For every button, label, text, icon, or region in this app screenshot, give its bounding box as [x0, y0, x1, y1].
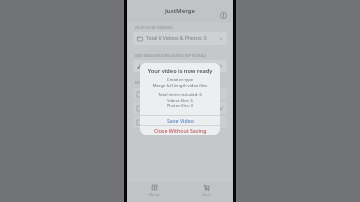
- staticText: Photos files: 0: [140, 103, 220, 108]
- staticText: Total 6 Videos & Photos: 0: [146, 35, 207, 42]
- staticText: Creation type: [140, 77, 220, 83]
- staticText: EXPORT: [135, 80, 150, 85]
- button[interactable]: Save Video: [140, 116, 220, 125]
- staticText: Select audio file: [145, 63, 182, 70]
- button[interactable]: Select audio file: [133, 60, 227, 72]
- staticText: FILES TO BE MERGED: [135, 25, 173, 30]
- staticText: Videos files: 6: [140, 98, 220, 103]
- button[interactable]: [133, 102, 227, 114]
- button[interactable]: [133, 88, 227, 100]
- staticText: Total items included: 6: [140, 92, 220, 98]
- staticText: ADD BACKGROUND AUDIO (OPTIONAL): [135, 53, 207, 58]
- button[interactable]: Merge: [128, 184, 180, 202]
- button[interactable]: [133, 116, 227, 128]
- staticText: Save Video: [167, 117, 194, 124]
- button[interactable]: Close Without Saving: [140, 126, 220, 135]
- staticText: Merge full length video files: [140, 83, 220, 89]
- staticText: Merge: [149, 192, 160, 197]
- staticText: Close Without Saving: [154, 127, 207, 134]
- button[interactable]: Store: [180, 184, 232, 202]
- staticText: Your video is now ready: [140, 67, 220, 75]
- staticText: JustMerge: [128, 7, 232, 15]
- button[interactable]: Info: [218, 10, 228, 20]
- button[interactable]: Total 6 Videos & Photos: 0: [133, 32, 227, 45]
- staticText: Store: [202, 192, 211, 197]
